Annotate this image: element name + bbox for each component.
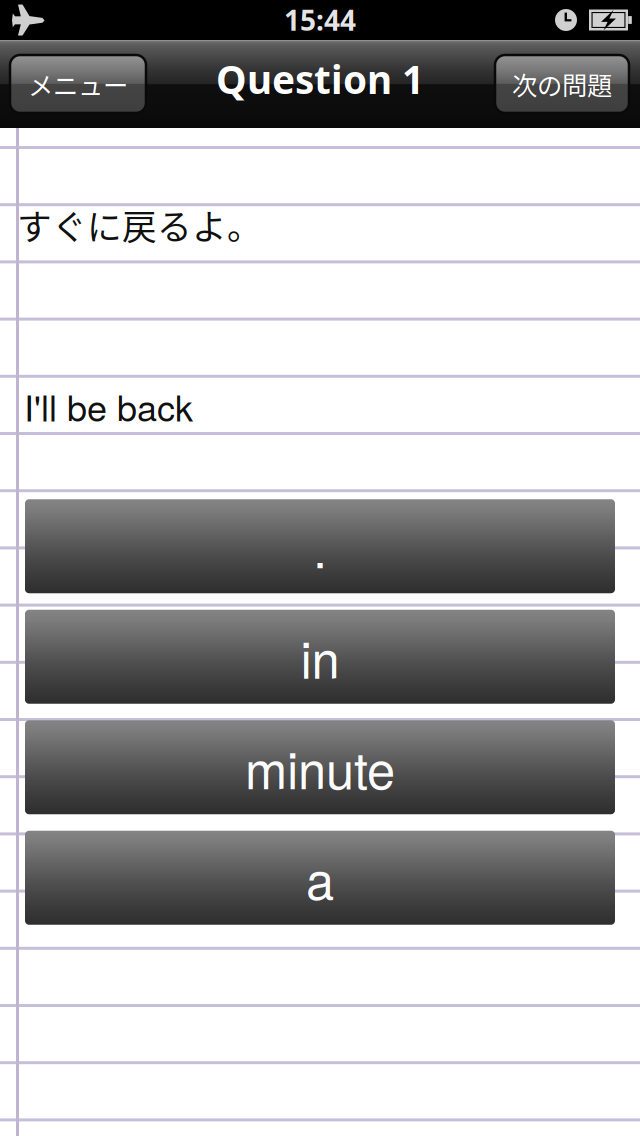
button[interactable]: メニュー (10, 55, 146, 113)
staticText: I'll be back (24, 380, 193, 432)
staticText: Question 1 (216, 53, 424, 105)
button[interactable]: a (25, 831, 615, 925)
button[interactable]: in (25, 610, 615, 704)
staticText: . (313, 510, 327, 583)
staticText: a (306, 841, 334, 914)
button[interactable]: minute (25, 720, 615, 814)
staticText: すぐに戻るよ。 (17, 200, 262, 250)
button[interactable]: . (25, 499, 615, 593)
staticText: minute (245, 731, 395, 804)
staticText: 15:44 (284, 1, 356, 39)
staticText: 次の問題 (512, 66, 612, 102)
staticText: メニュー (28, 66, 128, 102)
button[interactable]: 次の問題 (495, 55, 629, 113)
staticText: in (300, 620, 339, 693)
